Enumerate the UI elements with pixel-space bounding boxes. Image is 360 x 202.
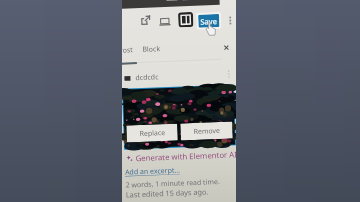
button[interactable]: Block (142, 42, 163, 56)
staticText: Post (122, 45, 134, 56)
button[interactable]: Preview device (157, 14, 173, 29)
button[interactable]: Block options (222, 67, 235, 81)
button[interactable]: More options (224, 13, 236, 28)
staticText: Last edited 15 days ago. (126, 186, 209, 200)
staticText: Add an excerpt… (125, 165, 180, 178)
staticText: Generate with Elementor AI (135, 149, 236, 163)
button[interactable]: Post (122, 43, 134, 57)
staticText: Block (142, 44, 161, 55)
button[interactable]: Close settings (219, 41, 234, 54)
staticText: Save (200, 16, 217, 27)
button[interactable]: Save (198, 14, 220, 28)
button[interactable]: Generate with Elementor AI (126, 149, 236, 164)
button[interactable]: Add an excerpt… (125, 165, 180, 178)
button[interactable]: Replace (126, 124, 178, 142)
staticText: Replace (139, 128, 166, 139)
staticText: 2 words, 1 minute read time. (125, 177, 221, 191)
button[interactable]: Toggle settings sidebar (178, 12, 194, 27)
button[interactable]: Remove (180, 121, 233, 140)
staticText: dcdcdc (135, 72, 159, 83)
button[interactable]: View post (138, 12, 153, 28)
button[interactable]: Replace (123, 85, 235, 149)
staticText: Remove (193, 126, 221, 137)
